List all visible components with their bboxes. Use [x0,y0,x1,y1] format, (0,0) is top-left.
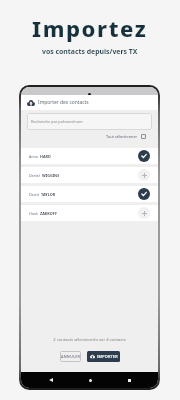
staticText: Anna [29,154,38,159]
staticText: ZAKKOFF [40,211,57,216]
button[interactable]: Back [44,373,58,387]
staticText: Tout sélectionner [106,134,138,139]
button[interactable]: Home [83,373,97,387]
button[interactable]: Tout sélectionner [106,134,146,139]
button[interactable]: IMPORTER [87,351,120,362]
staticText: Recherche par prénom/nom [31,119,83,124]
staticText: Importez [32,13,148,43]
staticText: Daniel [29,173,40,178]
staticText: ANNULER [61,354,81,359]
staticText: HARD [40,154,51,159]
staticText: TAYLOR [41,192,56,197]
button[interactable]: ANNULER [60,351,81,362]
staticText: David [29,192,39,197]
staticText: Importer des contacts [38,99,89,106]
staticText: 2 contacts sélectionnés sur 4 contacts [21,337,158,343]
staticText: IMPORTER [97,354,118,359]
button[interactable]: Recent apps [122,373,136,387]
button[interactable]: Anna [21,148,158,164]
button[interactable]: David [21,186,158,202]
button[interactable]: Recherche par prénom/nom [27,113,152,130]
staticText: vos contacts depuis/vers TX [42,47,138,56]
button[interactable]: Hank [21,205,158,221]
button[interactable]: Daniel [21,167,158,183]
staticText: WIGGINS [42,173,60,178]
staticText: Hank [29,211,38,216]
